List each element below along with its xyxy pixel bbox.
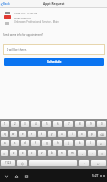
button[interactable]: u	[58, 131, 66, 137]
button[interactable]: j	[64, 140, 73, 146]
button[interactable]: g	[42, 140, 51, 146]
staticText: ,	[82, 151, 83, 155]
button[interactable]: ⇧	[98, 150, 106, 156]
button[interactable]: 6	[53, 121, 62, 127]
staticText: n	[61, 151, 63, 155]
button[interactable]: 4	[31, 121, 40, 127]
button[interactable]: p	[88, 131, 96, 137]
button[interactable]: l	[86, 140, 95, 146]
button[interactable]: .	[79, 160, 89, 166]
button[interactable]: f	[31, 140, 40, 146]
staticText: l	[90, 141, 91, 145]
button[interactable]: ⌫	[98, 131, 106, 137]
staticText: k	[79, 141, 81, 145]
staticText: c	[31, 151, 33, 155]
button[interactable]: q	[1, 131, 8, 137]
button[interactable]: x	[19, 150, 26, 156]
button[interactable]: 8	[75, 121, 84, 127]
staticText: t	[41, 132, 43, 136]
button[interactable]: Schedule	[4, 58, 104, 66]
staticText: a	[4, 141, 6, 145]
staticText: 5	[46, 122, 48, 126]
button[interactable]: 5	[42, 121, 51, 127]
button[interactable]: Back	[4, 174, 9, 179]
button[interactable]: o	[78, 131, 86, 137]
staticText: ⇧	[101, 152, 104, 155]
staticText: ↵	[100, 142, 103, 145]
button[interactable]: .	[88, 150, 96, 156]
button[interactable]: a	[1, 140, 9, 146]
button[interactable]: Home	[14, 174, 19, 179]
staticText: q	[4, 132, 6, 136]
button[interactable]: v	[38, 150, 46, 156]
staticText: I will be there.	[7, 48, 27, 52]
staticText: o	[81, 132, 83, 136]
staticText: m	[71, 151, 74, 155]
button[interactable]: Back	[0, 2, 10, 6]
button[interactable]: y	[48, 131, 56, 137]
button[interactable]: d	[21, 140, 29, 146]
staticText: s	[14, 141, 16, 145]
button[interactable]: c	[28, 150, 36, 156]
staticText: Appt Request	[43, 2, 65, 6]
staticText: z	[13, 151, 15, 155]
button[interactable]: ?123	[1, 160, 15, 166]
button[interactable]: b	[48, 150, 56, 156]
button[interactable]: w	[10, 131, 17, 137]
staticText: 8	[79, 122, 81, 126]
staticText: ⇧	[3, 152, 6, 155]
button[interactable]: t	[38, 131, 46, 137]
staticText: j	[68, 141, 69, 145]
staticText: 4	[35, 122, 37, 126]
button[interactable]: m	[68, 150, 76, 156]
button[interactable]: I will be there.	[3, 44, 105, 55]
button[interactable]: n	[58, 150, 66, 156]
staticText: Unknown Professional Service - Main	[14, 20, 59, 24]
staticText: u	[61, 132, 63, 136]
button[interactable]: h	[53, 140, 62, 146]
staticText: ☺	[21, 162, 24, 165]
staticText: e	[22, 132, 24, 136]
staticText: 9	[90, 122, 92, 126]
staticText: x	[22, 151, 24, 155]
staticText: h	[57, 141, 59, 145]
button[interactable]: r	[28, 131, 36, 137]
button[interactable]: 7	[64, 121, 73, 127]
button[interactable]: k	[75, 140, 84, 146]
staticText: i	[72, 132, 73, 136]
button[interactable]: i	[68, 131, 76, 137]
button[interactable]: 2	[11, 121, 19, 127]
button[interactable]: 0	[97, 121, 106, 127]
button[interactable]: 9	[86, 121, 95, 127]
button[interactable]: e	[19, 131, 26, 137]
staticText: 10:00 AM - 11:00 AM	[14, 11, 38, 14]
staticText: 3	[24, 122, 26, 126]
button[interactable]: s	[11, 140, 19, 146]
staticText: Schedule	[47, 60, 62, 64]
staticText: w	[12, 132, 15, 136]
button[interactable]: 3	[21, 121, 29, 127]
staticText: g	[46, 141, 48, 145]
button[interactable]: z	[10, 150, 17, 156]
staticText: 6	[57, 122, 59, 126]
staticText: Send some info for appointment?	[3, 33, 43, 36]
staticText: ↩	[97, 162, 100, 165]
button[interactable]: ,	[78, 150, 86, 156]
button[interactable]: ☺	[17, 160, 27, 166]
button[interactable]: ↩	[91, 160, 106, 166]
button[interactable]: ⇧	[1, 150, 8, 156]
button[interactable]: ↵	[97, 140, 106, 146]
staticText: ?123	[5, 161, 12, 165]
staticText: v	[41, 151, 43, 155]
staticText: y	[51, 132, 53, 136]
button[interactable]: 1	[1, 121, 9, 127]
button[interactable]: Recents	[24, 174, 29, 179]
staticText: b	[51, 151, 53, 155]
staticText: .	[84, 161, 85, 165]
staticText: r	[31, 132, 33, 136]
staticText: 5:27	[92, 174, 99, 178]
staticText: Study Time Inc	[14, 16, 31, 19]
staticText: Back	[3, 2, 10, 6]
staticText: ⌫	[100, 133, 104, 136]
button[interactable]	[29, 160, 77, 166]
